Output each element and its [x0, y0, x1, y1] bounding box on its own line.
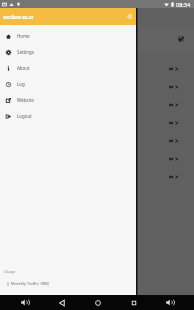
button[interactable] — [0, 132, 194, 150]
button[interactable]: Select all — [178, 36, 184, 42]
staticText: About — [17, 65, 30, 71]
staticText: Usage — [4, 269, 16, 274]
button[interactable]: sectbox-es.cz — [0, 8, 136, 25]
button[interactable]: Home — [0, 28, 136, 44]
button[interactable] — [0, 150, 194, 168]
button[interactable]: Volume up — [166, 299, 175, 306]
button[interactable] — [0, 78, 194, 96]
button[interactable]: Logout — [0, 108, 136, 124]
staticText: Monthly Traffic: 0MB — [11, 281, 49, 286]
button[interactable]: Settings — [0, 44, 136, 60]
staticText: Logout — [17, 113, 32, 119]
button[interactable]: Log — [0, 76, 136, 92]
button[interactable]: Recent apps — [130, 299, 138, 307]
staticText: sectbox-es.cz — [3, 14, 34, 20]
staticText: Website — [17, 97, 34, 103]
button[interactable] — [0, 114, 194, 132]
button[interactable]: Back — [58, 299, 66, 307]
staticText: Home — [17, 33, 30, 39]
button[interactable]: Monthly Traffic: 0MB — [7, 281, 136, 286]
button[interactable] — [0, 96, 194, 114]
staticText: Settings — [17, 49, 34, 55]
button[interactable]: Close navigation drawer — [127, 14, 132, 19]
staticText: Log — [17, 81, 25, 87]
button[interactable]: Home — [94, 299, 102, 307]
button[interactable] — [0, 168, 194, 186]
button[interactable] — [0, 60, 194, 78]
staticText: 08:34 — [176, 1, 191, 8]
button[interactable]: Website — [0, 92, 136, 108]
button[interactable]: About — [0, 60, 136, 76]
button[interactable]: Volume down — [21, 299, 30, 306]
